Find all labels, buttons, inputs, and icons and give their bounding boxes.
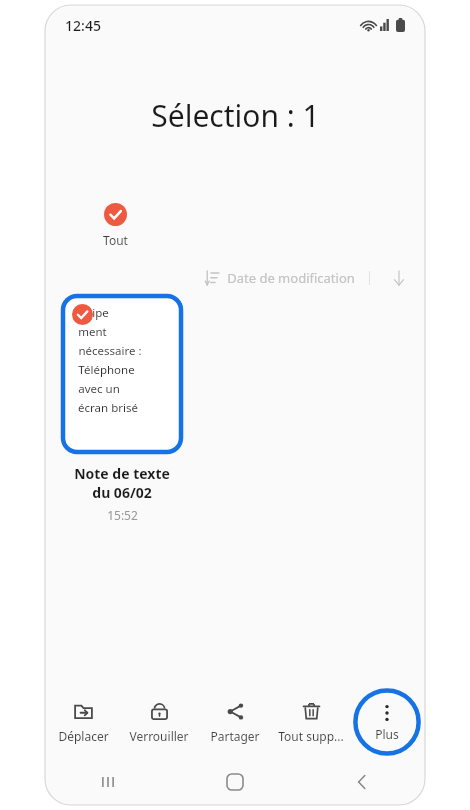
button[interactable]: Récents — [45, 759, 171, 805]
staticText: Verrouiller — [129, 728, 189, 744]
staticText: Note de texte — [74, 464, 170, 483]
staticText: du 06/02 — [92, 483, 152, 502]
staticText: 12:45 — [65, 16, 101, 35]
staticText: Téléphone — [78, 362, 135, 378]
button[interactable]: quipe — [63, 296, 181, 452]
staticText: Tout — [103, 232, 128, 248]
button[interactable]: Tout — [103, 203, 128, 248]
staticText: quipe — [78, 305, 109, 321]
staticText: écran brisé — [78, 400, 138, 416]
staticText: Date de modification — [227, 269, 355, 287]
button[interactable]: Tout supp... — [274, 695, 348, 750]
staticText: Sélection : 1 — [151, 95, 320, 136]
button[interactable]: Déplacer — [54, 695, 113, 750]
button[interactable]: Plus — [353, 688, 421, 756]
staticText: avec un — [78, 381, 120, 397]
staticText: Plus — [375, 726, 399, 742]
staticText: Déplacer — [58, 728, 109, 744]
button[interactable]: Accueil — [171, 759, 298, 805]
button[interactable]: Verrouiller — [125, 695, 193, 750]
staticText: ment — [78, 324, 107, 340]
staticText: nécessaire : — [78, 343, 142, 359]
button[interactable]: Ordre décroissant — [386, 265, 412, 291]
button[interactable]: Partager — [206, 695, 264, 750]
button[interactable]: Retour — [298, 759, 425, 805]
button[interactable]: Date de modification — [205, 269, 355, 287]
staticText: 15:52 — [107, 507, 138, 523]
staticText: Partager — [210, 728, 260, 744]
staticText: Tout supp... — [278, 728, 344, 744]
